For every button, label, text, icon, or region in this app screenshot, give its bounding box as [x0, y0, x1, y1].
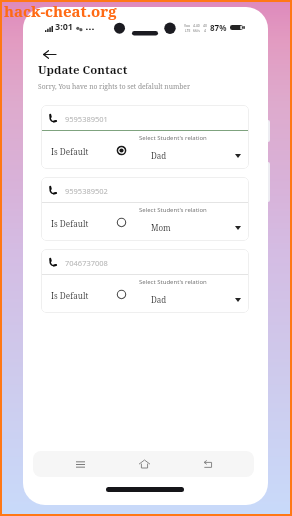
button[interactable]: Is default number — [112, 213, 130, 231]
button[interactable]: Is default number — [112, 141, 130, 159]
staticText: Sorry, You have no rights to set defalul… — [38, 82, 191, 91]
staticText: 87% — [210, 22, 227, 33]
staticText: 3:01 — [55, 20, 73, 32]
button[interactable]: Recent apps — [63, 451, 97, 477]
staticText: Update Contact — [38, 62, 128, 78]
staticText: Select Student's relation — [139, 206, 207, 214]
button[interactable]: Home — [127, 451, 161, 477]
staticText: Dad — [151, 150, 167, 161]
button[interactable]: Select Student's relation — [139, 134, 245, 161]
staticText: 7046737008 — [65, 258, 108, 268]
staticText: 9595389502 — [65, 186, 108, 196]
staticText: 4 — [204, 28, 206, 33]
button[interactable]: Back — [190, 451, 224, 477]
staticText: 4.40 — [193, 23, 200, 28]
staticText: Dad — [151, 294, 167, 305]
staticText: 9595389501 — [65, 114, 108, 124]
staticText: 40 — [203, 23, 207, 28]
button[interactable]: Back — [36, 41, 62, 67]
button[interactable]: Select Student's relation — [139, 278, 245, 305]
staticText: hack-cheat.org — [4, 1, 117, 21]
staticText: Mom — [151, 222, 171, 233]
staticText: LTE — [185, 28, 191, 33]
staticText: Is Default — [51, 146, 89, 157]
staticText: 66/s — [193, 28, 200, 33]
staticText: Is Default — [51, 290, 89, 301]
staticText: Select Student's relation — [139, 278, 207, 286]
staticText: Voo — [184, 23, 191, 28]
button[interactable]: Is default number — [112, 285, 130, 303]
staticText: Is Default — [51, 218, 89, 229]
button[interactable]: Select Student's relation — [139, 206, 245, 233]
staticText: Select Student's relation — [139, 134, 207, 142]
